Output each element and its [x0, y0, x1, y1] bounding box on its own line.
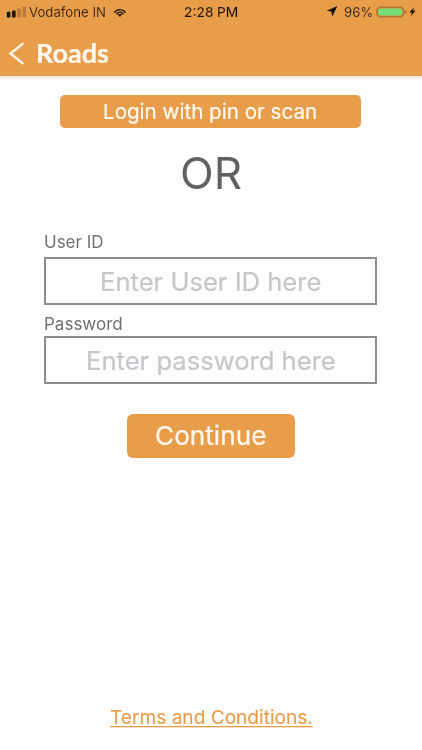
staticText: Continue: [155, 420, 267, 452]
staticText: OR: [180, 146, 242, 199]
staticText: 96%: [344, 4, 374, 20]
button[interactable]: Terms and Conditions.: [110, 705, 313, 728]
button[interactable]: Enter User ID here: [44, 257, 377, 305]
button[interactable]: Back: [0, 36, 32, 70]
staticText: Login with pin or scan: [103, 99, 318, 124]
staticText: Vodafone IN: [29, 4, 106, 20]
staticText: 2:28 PM: [184, 4, 239, 20]
button[interactable]: Login with pin or scan: [60, 95, 361, 128]
staticText: User ID: [44, 232, 104, 253]
button[interactable]: Enter password here: [44, 336, 377, 384]
button[interactable]: Continue: [127, 414, 295, 458]
staticText: Roads: [36, 36, 109, 68]
staticText: Enter password here: [86, 345, 336, 376]
staticText: Password: [44, 314, 123, 335]
staticText: Enter User ID here: [100, 266, 322, 297]
